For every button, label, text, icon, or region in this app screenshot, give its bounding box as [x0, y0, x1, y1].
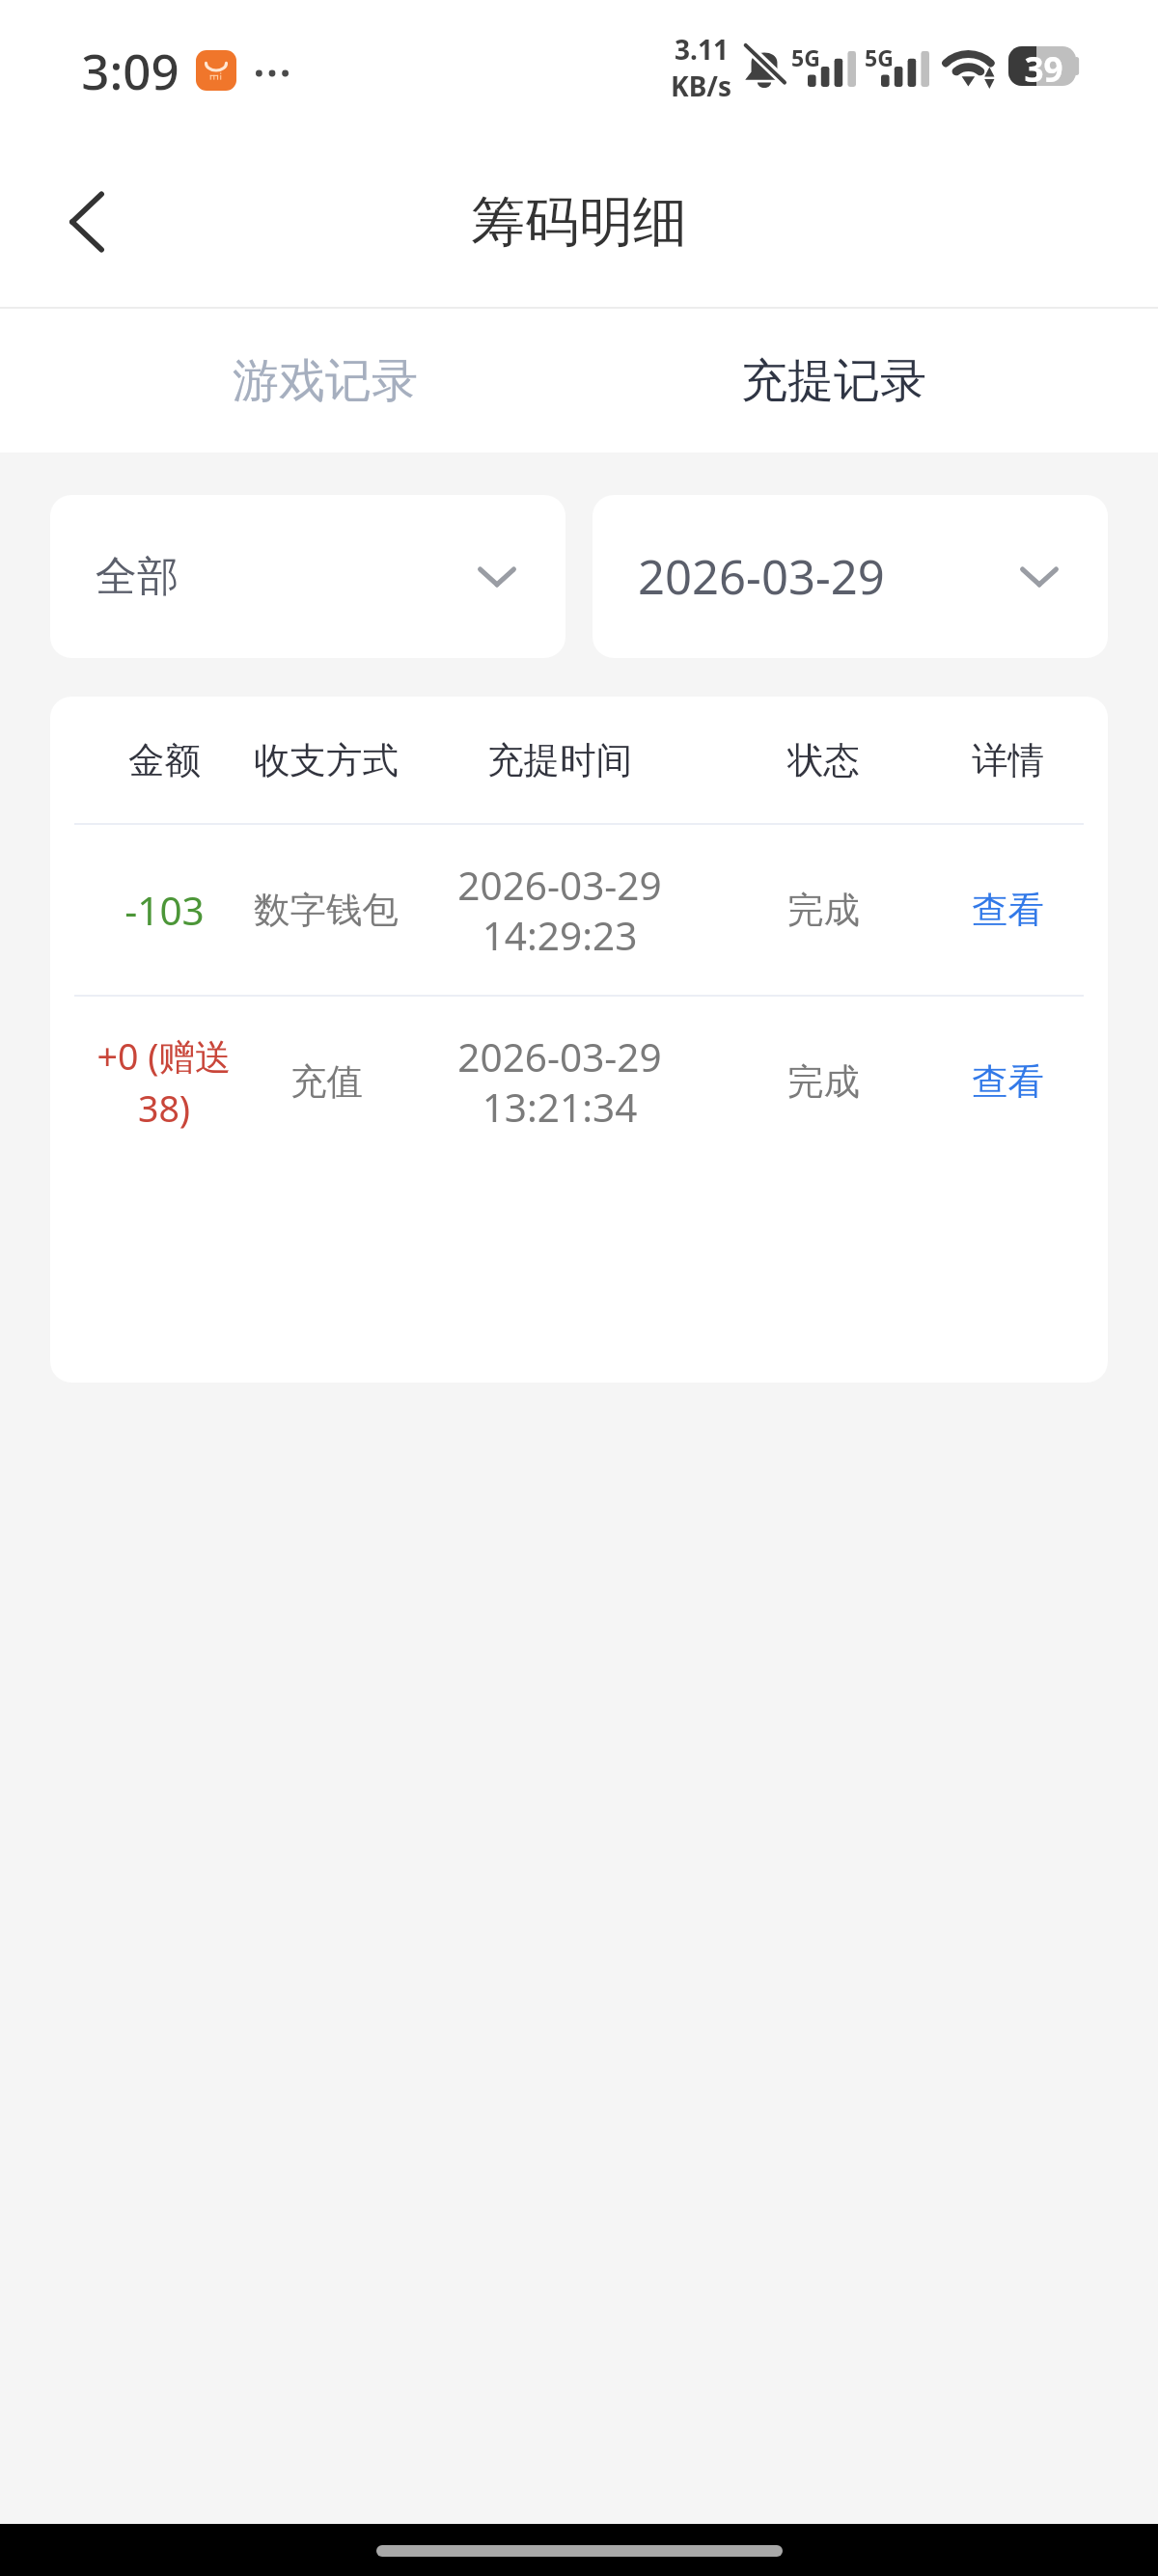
staticText: 5G — [791, 42, 820, 72]
staticText: KB/s — [671, 68, 731, 104]
staticText: 39 — [1024, 46, 1063, 86]
staticText: 详情 — [972, 738, 1044, 783]
button[interactable]: 游戏记录 — [70, 309, 579, 452]
staticText: 全部 — [96, 551, 179, 603]
staticText: 充值 — [290, 1059, 363, 1105]
staticText: 查看 — [972, 888, 1044, 933]
staticText: 游戏记录 — [233, 352, 418, 410]
staticText: +0 (赠送 38) — [68, 1031, 261, 1133]
button[interactable]: 查看 — [882, 852, 1108, 968]
staticText: 状态 — [787, 738, 860, 783]
staticText: 数字钱包 — [254, 888, 399, 933]
button[interactable]: 充提记录 — [579, 309, 1088, 452]
staticText: 收支方式 — [254, 738, 399, 783]
staticText: 3:09 — [81, 37, 179, 103]
staticText: -103 — [124, 884, 205, 937]
staticText: 充提记录 — [741, 352, 926, 410]
staticText: 2026-03-29 14:29:23 — [457, 859, 662, 962]
staticText: 2026-03-29 — [638, 544, 885, 609]
staticText: 2026-03-29 13:21:34 — [457, 1030, 662, 1134]
staticText: 完成 — [787, 888, 860, 933]
button[interactable]: 2026-03-29 — [593, 495, 1108, 658]
staticText: 筹码明细 — [471, 188, 687, 257]
staticText: 完成 — [787, 1059, 860, 1105]
staticText: 5G — [865, 42, 894, 72]
button[interactable]: 全部 — [50, 495, 565, 658]
staticText: 3.11 — [675, 31, 729, 68]
button[interactable]: Back — [41, 176, 133, 268]
staticText: 查看 — [972, 1059, 1044, 1105]
staticText: 金额 — [128, 738, 201, 783]
button[interactable]: 查看 — [882, 1024, 1108, 1139]
staticText: 充提时间 — [487, 738, 632, 783]
